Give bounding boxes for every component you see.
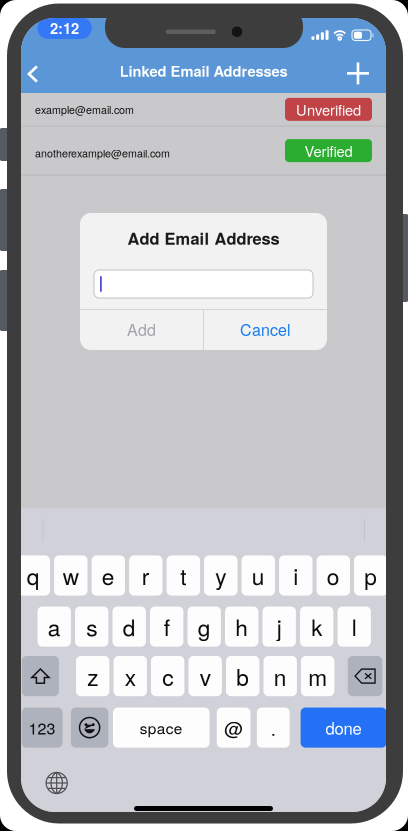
button[interactable]: example@email.com [21,93,386,126]
button[interactable]: r [129,555,162,596]
staticText: d [123,610,136,643]
button[interactable]: l [337,606,371,647]
staticText: o [327,559,340,592]
button[interactable]: Back [16,54,50,94]
button[interactable]: 123 [22,707,63,748]
staticText: Verified [304,140,352,161]
staticText: e [102,559,115,592]
staticText: y [215,559,226,592]
button[interactable]: Shift [22,656,59,696]
button[interactable]: j [262,606,296,647]
staticText: r [142,559,150,592]
button[interactable]: c [151,656,184,696]
button[interactable]: m [301,656,334,696]
button[interactable]: done [301,707,387,748]
staticText: c [162,660,173,692]
staticText: v [200,660,211,692]
button[interactable]: t [167,555,200,596]
button[interactable]: w [54,555,87,596]
staticText: Cancel [240,317,291,340]
button[interactable]: anotherexample@email.com [21,127,386,174]
button[interactable]: a [37,606,71,647]
staticText: space [140,717,183,739]
button[interactable]: d [112,606,146,647]
staticText: p [364,559,377,592]
button[interactable]: Cancel [204,309,327,349]
button[interactable]: n [263,656,297,696]
button[interactable]: s [75,606,108,647]
staticText: i [293,559,298,592]
button[interactable]: i [279,555,312,596]
staticText: 2:12 [50,17,79,38]
staticText: m [308,660,327,692]
staticText: x [125,660,136,692]
button[interactable]: x [113,656,147,696]
button[interactable]: g [187,606,221,647]
staticText: t [180,559,186,592]
button[interactable]: h [225,606,258,647]
staticText: j [277,610,282,643]
button[interactable]: space [113,707,209,748]
staticText: example@email.com [35,102,134,117]
staticText: a [48,610,61,643]
button[interactable]: f [150,606,183,647]
staticText: anotherexample@email.com [35,145,170,161]
button[interactable]: Emoji [71,707,108,748]
staticText: n [274,660,287,692]
staticText: @ [224,714,243,741]
staticText: k [311,610,322,643]
staticText: 123 [29,716,56,739]
button[interactable]: v [188,656,222,696]
staticText: . [271,714,276,741]
staticText: u [252,559,265,592]
staticText: Linked Email Addresses [119,60,287,81]
staticText: w [63,559,79,592]
staticText: g [198,610,211,643]
staticText: Add [127,317,156,340]
staticText: b [236,660,249,692]
button[interactable]: y [204,555,237,596]
button[interactable]: o [317,555,350,596]
staticText: Unverified [296,99,361,120]
button[interactable]: e [92,555,125,596]
staticText: Add Email Address [127,226,279,250]
button[interactable]: b [226,656,259,696]
staticText: z [87,660,98,692]
staticText: done [326,716,362,740]
button[interactable]: k [300,606,333,647]
staticText: h [235,610,248,643]
staticText: q [27,559,40,592]
button[interactable]: z [76,656,109,696]
button[interactable]: Add [80,309,203,349]
button[interactable]: Next keyboard [39,765,75,801]
button[interactable]: p [354,555,387,596]
button[interactable]: u [242,555,275,596]
button[interactable]: @ [217,707,250,748]
staticText: f [164,610,170,643]
staticText: l [352,610,357,643]
button[interactable]: Delete [348,656,382,696]
button[interactable]: q [17,555,50,596]
button[interactable]: . [257,707,290,748]
button[interactable]: Add email address [338,53,378,93]
staticText: s [86,610,97,643]
